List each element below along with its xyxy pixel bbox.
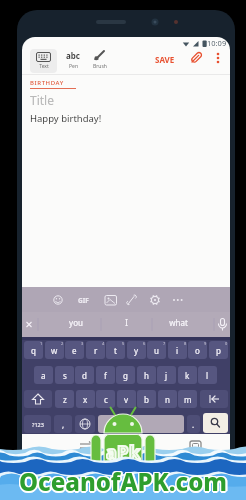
button[interactable]: p [209, 341, 228, 359]
staticText: g [123, 370, 128, 381]
button[interactable] [186, 437, 206, 455]
staticText: abc [66, 50, 80, 61]
button[interactable] [75, 415, 95, 433]
button[interactable] [24, 390, 52, 408]
button[interactable]: t [106, 341, 125, 359]
button[interactable]: g [116, 366, 135, 384]
button[interactable] [24, 316, 40, 332]
button[interactable] [30, 49, 57, 73]
staticText: 9 [204, 341, 207, 346]
staticText: 1 [40, 341, 43, 346]
button[interactable] [200, 390, 228, 408]
staticText: , [62, 419, 65, 430]
staticText: what [169, 317, 188, 328]
staticText: 7 [163, 341, 166, 346]
staticText: n [165, 394, 170, 405]
button[interactable]: k [178, 366, 197, 384]
staticText: x [83, 394, 88, 405]
button[interactable]: , [54, 415, 72, 433]
button[interactable]: b [137, 390, 156, 408]
button[interactable] [203, 413, 228, 433]
button[interactable] [28, 90, 224, 108]
button[interactable] [189, 50, 204, 65]
staticText: u [154, 345, 159, 356]
staticText: 2 [61, 341, 64, 346]
button[interactable] [131, 437, 151, 455]
button[interactable] [28, 110, 224, 128]
staticText: s [63, 370, 67, 381]
button[interactable] [98, 415, 184, 433]
button[interactable]: ?123 [24, 415, 51, 433]
button[interactable]: h [137, 366, 156, 384]
button[interactable] [146, 292, 164, 308]
button[interactable]: I [102, 317, 150, 331]
button[interactable] [214, 52, 222, 64]
button[interactable] [49, 292, 67, 308]
button[interactable]: a [34, 366, 53, 384]
staticText: 10:09 [207, 38, 227, 48]
staticText: k [185, 370, 190, 381]
button[interactable]: w [45, 341, 64, 359]
staticText: w [51, 345, 58, 356]
button[interactable] [123, 292, 141, 308]
button[interactable]: o [188, 341, 207, 359]
button[interactable]: f [96, 366, 115, 384]
staticText: 6 [143, 341, 146, 346]
button[interactable]: i [168, 341, 187, 359]
staticText: OceanofAPK.com [19, 464, 227, 497]
button[interactable]: what [154, 317, 202, 331]
button[interactable] [101, 292, 119, 308]
staticText: j [165, 370, 168, 381]
staticText: q [31, 345, 36, 356]
staticText: t [114, 345, 117, 356]
staticText: p [216, 345, 221, 356]
staticText: OceanofAPK.com [19, 467, 227, 500]
staticText: SAVE [155, 54, 175, 65]
staticText: e [72, 345, 77, 356]
staticText: GIF [78, 296, 89, 305]
staticText: OceanofAPK.com [21, 465, 229, 498]
staticText: 8 [184, 341, 187, 346]
staticText: OceanofAPK.com [19, 465, 227, 498]
button[interactable]: e [65, 341, 84, 359]
button[interactable]: l [198, 366, 217, 384]
button[interactable]: q [24, 341, 43, 359]
staticText: you [69, 317, 83, 328]
staticText: f [104, 370, 107, 381]
button[interactable]: z [55, 390, 74, 408]
staticText: Brush [93, 63, 107, 70]
button[interactable]: . [187, 415, 200, 433]
button[interactable] [169, 292, 187, 308]
button[interactable]: c [96, 390, 115, 408]
button[interactable]: m [178, 390, 197, 408]
button[interactable]: j [157, 366, 176, 384]
staticText: OceanofAPK.com [18, 464, 226, 497]
staticText: d [82, 370, 87, 381]
button[interactable]: d [75, 366, 94, 384]
button[interactable]: x [76, 390, 95, 408]
button[interactable]: v [117, 390, 136, 408]
button[interactable]: n [158, 390, 177, 408]
button[interactable] [75, 292, 93, 308]
button[interactable]: you [52, 317, 100, 331]
staticText: Happy birthday! [30, 112, 102, 125]
staticText: i [176, 345, 179, 356]
button[interactable]: u [147, 341, 166, 359]
button[interactable] [214, 316, 230, 332]
staticText: 4 [102, 341, 105, 346]
button[interactable] [88, 49, 114, 72]
staticText: Title [30, 92, 54, 108]
staticText: OceanofAPK.com [20, 466, 228, 499]
staticText: l [206, 370, 209, 381]
button[interactable] [60, 49, 86, 72]
staticText: y [134, 345, 139, 356]
staticText: m [184, 394, 192, 405]
button[interactable]: y [127, 341, 146, 359]
staticText: b [144, 394, 149, 405]
button[interactable]: s [55, 366, 74, 384]
button[interactable]: SAVE [155, 54, 175, 65]
button[interactable]: r [86, 341, 105, 359]
button[interactable] [76, 437, 96, 455]
staticText: z [63, 394, 67, 405]
button[interactable]: Text [30, 63, 57, 77]
